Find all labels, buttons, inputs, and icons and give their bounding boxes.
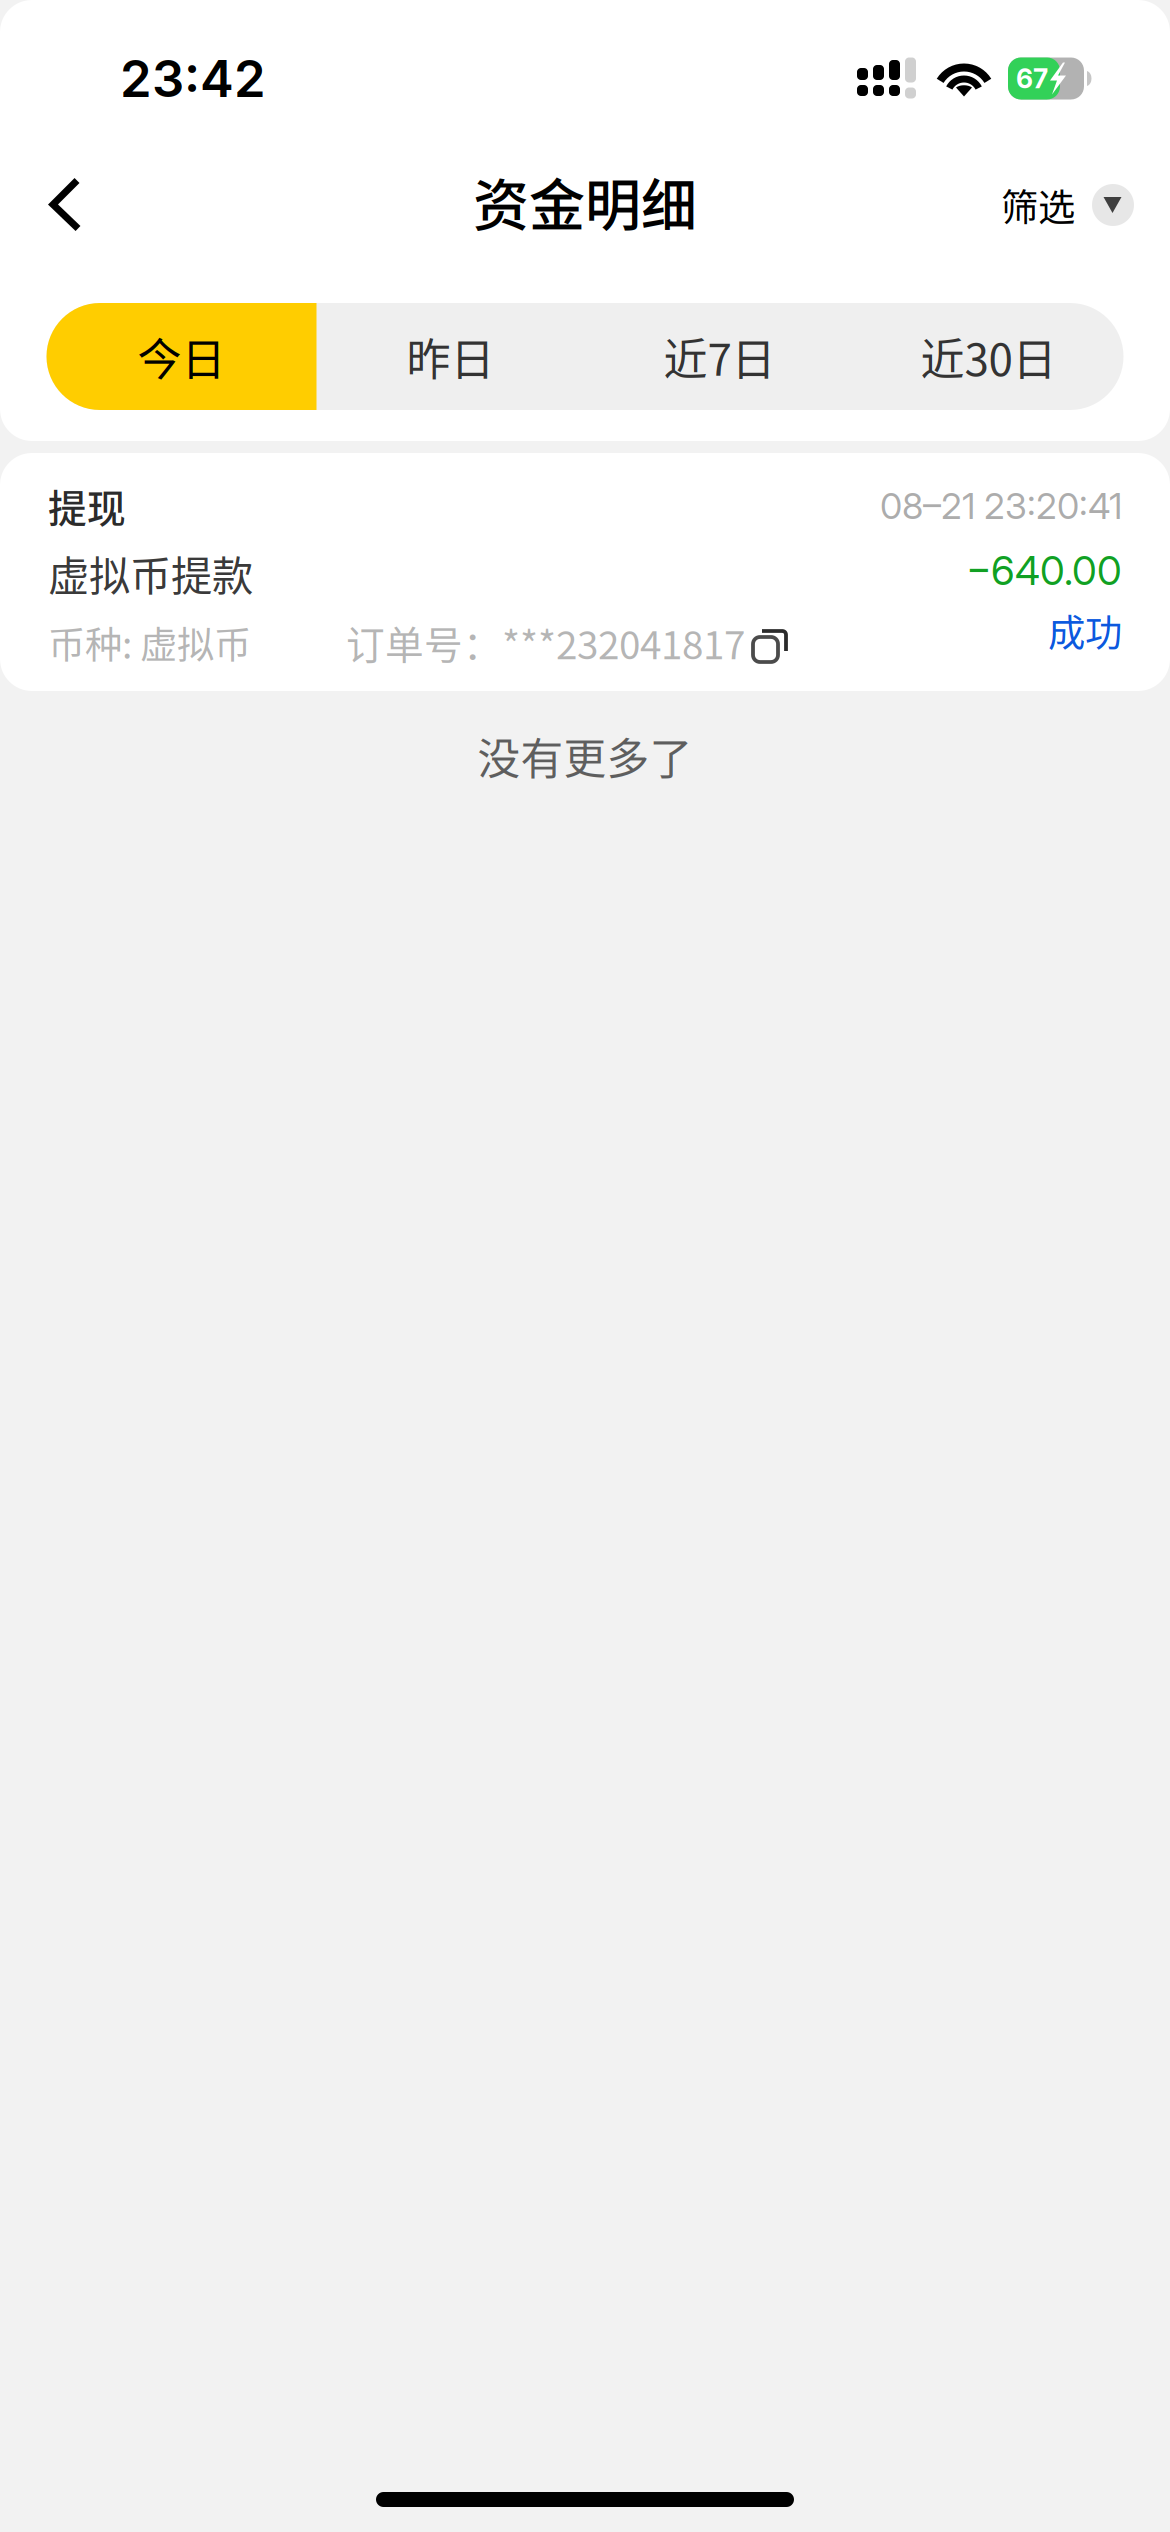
button[interactable]: Back — [0, 140, 130, 270]
button[interactable]: 昨日 — [316, 303, 585, 410]
staticText: 近7日 — [663, 325, 775, 388]
staticText: 提现 — [48, 478, 126, 534]
button[interactable]: Copy order number — [753, 621, 789, 664]
button[interactable]: 筛选 — [971, 140, 1170, 270]
button[interactable]: 近7日 — [585, 303, 854, 410]
staticText: 筛选 — [1001, 178, 1075, 232]
staticText: 今日 — [137, 325, 225, 388]
staticText: 没有更多了 — [477, 725, 692, 787]
button[interactable]: 今日 — [47, 303, 316, 410]
staticText: 币种: 虚拟币 — [48, 615, 251, 670]
button[interactable]: 近30日 — [854, 303, 1123, 410]
staticText: 成功 — [1048, 603, 1122, 658]
staticText: 近30日 — [920, 325, 1056, 388]
staticText: 08–21 23:20:41 — [880, 484, 1122, 528]
staticText: −640.00 — [966, 546, 1122, 595]
staticText: 虚拟币提款 — [48, 543, 253, 603]
staticText: 67 — [1016, 62, 1048, 95]
staticText: 23:42 — [120, 48, 266, 109]
staticText: 昨日 — [406, 325, 494, 388]
staticText: 资金明细 — [473, 160, 697, 242]
staticText: 订单号：***232041817 — [346, 614, 745, 670]
